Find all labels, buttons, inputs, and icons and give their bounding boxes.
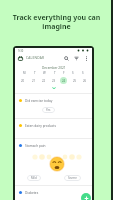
button[interactable]: Calendar: [18, 56, 23, 61]
staticText: Severe: [68, 176, 77, 180]
staticText: 23: [52, 79, 56, 83]
staticText: T: [34, 71, 36, 75]
button[interactable]: Diabetes: [15, 186, 92, 200]
staticText: Stomach pain: [25, 144, 46, 148]
button[interactable]: 24: [60, 77, 67, 84]
button[interactable]: 22: [40, 77, 47, 84]
button[interactable]: 26: [81, 77, 88, 84]
button[interactable]: 25: [71, 77, 78, 84]
staticText: Diabetes: [25, 191, 39, 195]
button[interactable]: Severe: [68, 176, 77, 180]
button[interactable]: Expand calendar: [15, 85, 92, 90]
staticText: T: [54, 71, 56, 75]
button[interactable]: 23: [50, 77, 57, 84]
staticText: 22: [42, 79, 46, 83]
button[interactable]: More options: [84, 56, 89, 61]
staticText: Eaten dairy products: [25, 124, 56, 128]
staticText: W: [43, 71, 46, 75]
staticText: Did exercise today: [25, 99, 53, 103]
staticText: S: [72, 71, 74, 75]
staticText: F: [63, 71, 65, 75]
staticText: 24: [62, 79, 66, 83]
button[interactable]: Search: [64, 56, 69, 61]
button[interactable]: Mild: [31, 176, 37, 180]
staticText: December 2021: [42, 66, 66, 70]
button[interactable]: Yes: [46, 108, 51, 112]
staticText: Yes: [46, 108, 51, 112]
staticText: S: [82, 71, 84, 75]
button[interactable]: Filter: [74, 56, 79, 61]
staticText: Mild: [31, 176, 37, 180]
staticText: 26: [83, 79, 87, 83]
staticText: 25: [73, 79, 77, 83]
staticText: CALENDAR: [26, 56, 45, 60]
button[interactable]: 20: [19, 77, 26, 84]
button[interactable]: Eaten dairy products: [15, 119, 92, 138]
staticText: 21: [32, 79, 36, 83]
staticText: 9:30: [18, 49, 24, 53]
button[interactable]: Did exercise today: [15, 94, 92, 118]
staticText: M: [23, 71, 26, 75]
button[interactable]: 21: [30, 77, 37, 84]
staticText: Track everything you can imagine: [4, 13, 109, 31]
button[interactable]: Add entry: [81, 193, 91, 200]
staticText: 20: [21, 79, 25, 83]
